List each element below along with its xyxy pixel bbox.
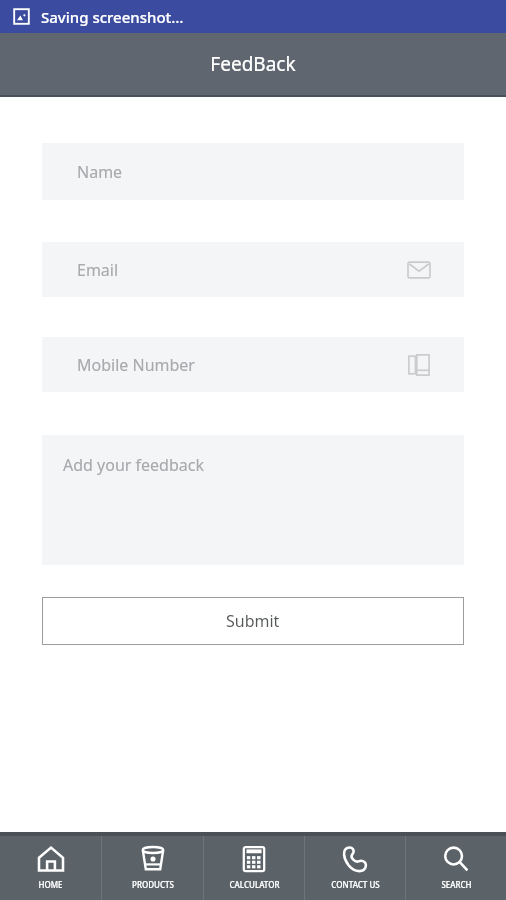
staticText: Submit bbox=[226, 610, 280, 632]
other: Email bbox=[408, 259, 430, 281]
button[interactable]: HOME bbox=[0, 836, 101, 900]
button[interactable]: PRODUCTS bbox=[102, 836, 203, 900]
staticText: FeedBack bbox=[210, 51, 296, 77]
staticText: CALCULATOR bbox=[229, 879, 280, 890]
staticText: Mobile Number bbox=[77, 354, 195, 376]
staticText: Email bbox=[77, 259, 119, 281]
button[interactable]: Email bbox=[42, 242, 464, 297]
staticText: Add your feedback bbox=[63, 454, 204, 476]
staticText: PRODUCTS bbox=[132, 879, 174, 890]
other: Contacts bbox=[408, 354, 430, 376]
button[interactable]: SEARCH bbox=[406, 836, 506, 900]
button[interactable]: Name bbox=[42, 143, 464, 200]
staticText: CONTACT US bbox=[331, 879, 380, 890]
button[interactable]: Submit bbox=[42, 597, 464, 645]
staticText: Saving screenshot… bbox=[41, 7, 184, 27]
button[interactable]: CONTACT US bbox=[305, 836, 405, 900]
button[interactable]: Add your feedback bbox=[42, 435, 464, 565]
staticText: SEARCH bbox=[441, 879, 472, 890]
staticText: Name bbox=[77, 161, 123, 183]
button[interactable]: Mobile Number bbox=[42, 337, 464, 392]
button[interactable]: CALCULATOR bbox=[204, 836, 304, 900]
staticText: HOME bbox=[38, 879, 63, 890]
